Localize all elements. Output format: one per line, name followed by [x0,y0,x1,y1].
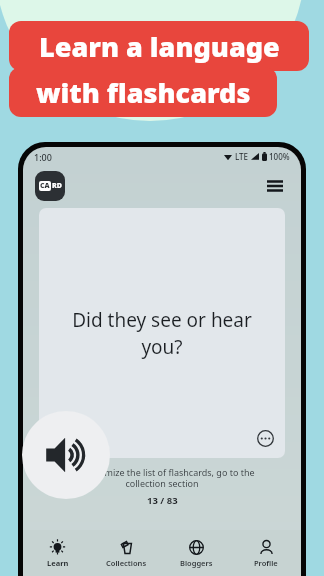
staticText: RD [52,181,62,191]
button[interactable]: Collections [92,530,161,576]
staticText: with flashcards [36,74,251,111]
button[interactable]: Profile [231,530,301,576]
button[interactable]: Bloggers [161,530,231,576]
staticText: Bloggers [180,558,213,568]
button[interactable]: More options [257,430,274,447]
staticText: 100% [269,151,290,162]
staticText: Learn a language [39,28,280,65]
button[interactable]: Menu [261,172,289,200]
staticText: Collections [106,558,147,568]
button[interactable]: Did they see or hear you? [39,208,285,458]
button[interactable]: CARD app logo [35,171,65,201]
staticText: 13 / 83 [147,494,178,507]
staticText: Learn [47,558,69,568]
button[interactable]: Play pronunciation [22,411,110,499]
staticText: LTE [235,151,249,162]
staticText: CA [40,181,50,191]
staticText: Profile [254,558,278,568]
staticText: 1:00 [34,151,52,163]
staticText: To customize the list of flashcards, go … [51,466,273,490]
button[interactable]: Learn [23,530,92,576]
staticText: Did they see or hear you? [61,307,263,360]
